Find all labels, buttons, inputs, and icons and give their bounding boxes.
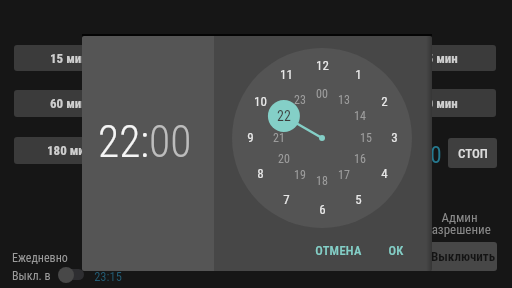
staticText: Выкл. в [12,269,51,282]
button[interactable]: 45 мин [381,45,496,71]
staticText: 15 [360,131,372,145]
button[interactable]: ОК [376,239,416,261]
staticText: 22:00 [98,117,192,161]
staticText: 1 [355,67,362,82]
staticText: 16 [354,152,366,166]
staticText: 60 мин [50,96,88,111]
staticText: Ежедневно [12,251,68,264]
staticText: 8 [257,166,264,181]
button[interactable] [56,265,86,284]
staticText: 2 [381,94,388,109]
staticText: 10 [254,94,267,109]
staticText: разрешение [425,222,491,237]
staticText: 3 [391,130,398,145]
button[interactable]: СТОП [448,138,497,168]
staticText: 18 [316,174,328,188]
button[interactable]: 23:15 [88,268,128,284]
button[interactable]: ОТМЕНА [303,239,373,261]
staticText: 7 [283,192,290,207]
button[interactable]: 90 мин [381,89,496,117]
staticText: 11 [280,67,293,82]
staticText: 14 [354,109,366,123]
staticText: 23 [294,93,306,107]
staticText: 00 [316,87,328,101]
staticText: 13 [338,93,350,107]
staticText: 12 [316,58,329,73]
staticText: Админ [441,210,478,225]
button[interactable]: 15 мин [14,45,124,71]
staticText: 21 [273,131,285,145]
staticText: 17 [338,168,350,182]
button[interactable]: Выключить [429,242,497,271]
staticText: 5 [355,192,362,207]
staticText: 19 [294,168,306,182]
staticText: СТОП [458,146,488,161]
staticText: Выключить [431,249,496,264]
staticText: 20 [278,152,290,166]
button[interactable]: 180 мин [14,137,124,164]
staticText: 180 мин [47,143,92,158]
staticText: 6 [319,202,326,217]
staticText: 0 [430,142,442,169]
staticText: 9 [247,130,254,145]
staticText: ОТМЕНА [315,243,362,258]
staticText: 15 мин [50,51,88,66]
staticText: 23:15 [94,269,122,284]
staticText: 4 [381,166,388,181]
staticText: 90 мин [420,96,458,111]
staticText: ОК [388,243,404,258]
staticText: 22 [277,108,291,124]
button[interactable]: 60 мин [14,90,124,117]
staticText: 45 мин [420,51,458,66]
